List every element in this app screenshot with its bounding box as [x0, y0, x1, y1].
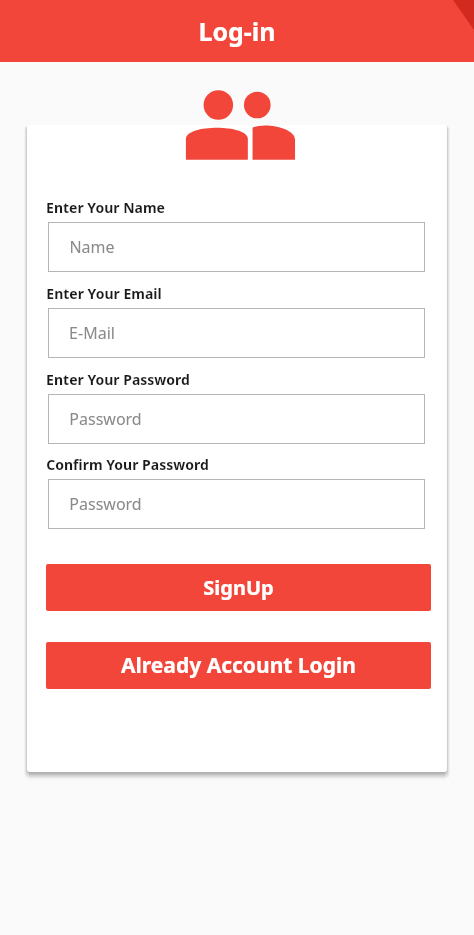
- staticText: E-Mail: [69, 322, 115, 344]
- button[interactable]: SignUp: [46, 564, 431, 611]
- button[interactable]: Already Account Login: [46, 642, 431, 689]
- staticText: Log-in: [198, 14, 276, 48]
- staticText: Enter Your Name: [46, 198, 165, 217]
- staticText: Password: [69, 408, 142, 430]
- button[interactable]: E-Mail: [48, 308, 425, 358]
- button[interactable]: Password: [48, 479, 425, 529]
- button[interactable]: Password: [48, 394, 425, 444]
- button[interactable]: Name: [48, 222, 425, 272]
- staticText: Confirm Your Password: [46, 455, 209, 474]
- staticText: SignUp: [203, 574, 274, 601]
- staticText: Password: [69, 493, 142, 515]
- staticText: Enter Your Password: [46, 370, 190, 389]
- staticText: Already Account Login: [121, 651, 356, 680]
- staticText: Enter Your Email: [46, 284, 162, 303]
- staticText: Name: [69, 236, 115, 258]
